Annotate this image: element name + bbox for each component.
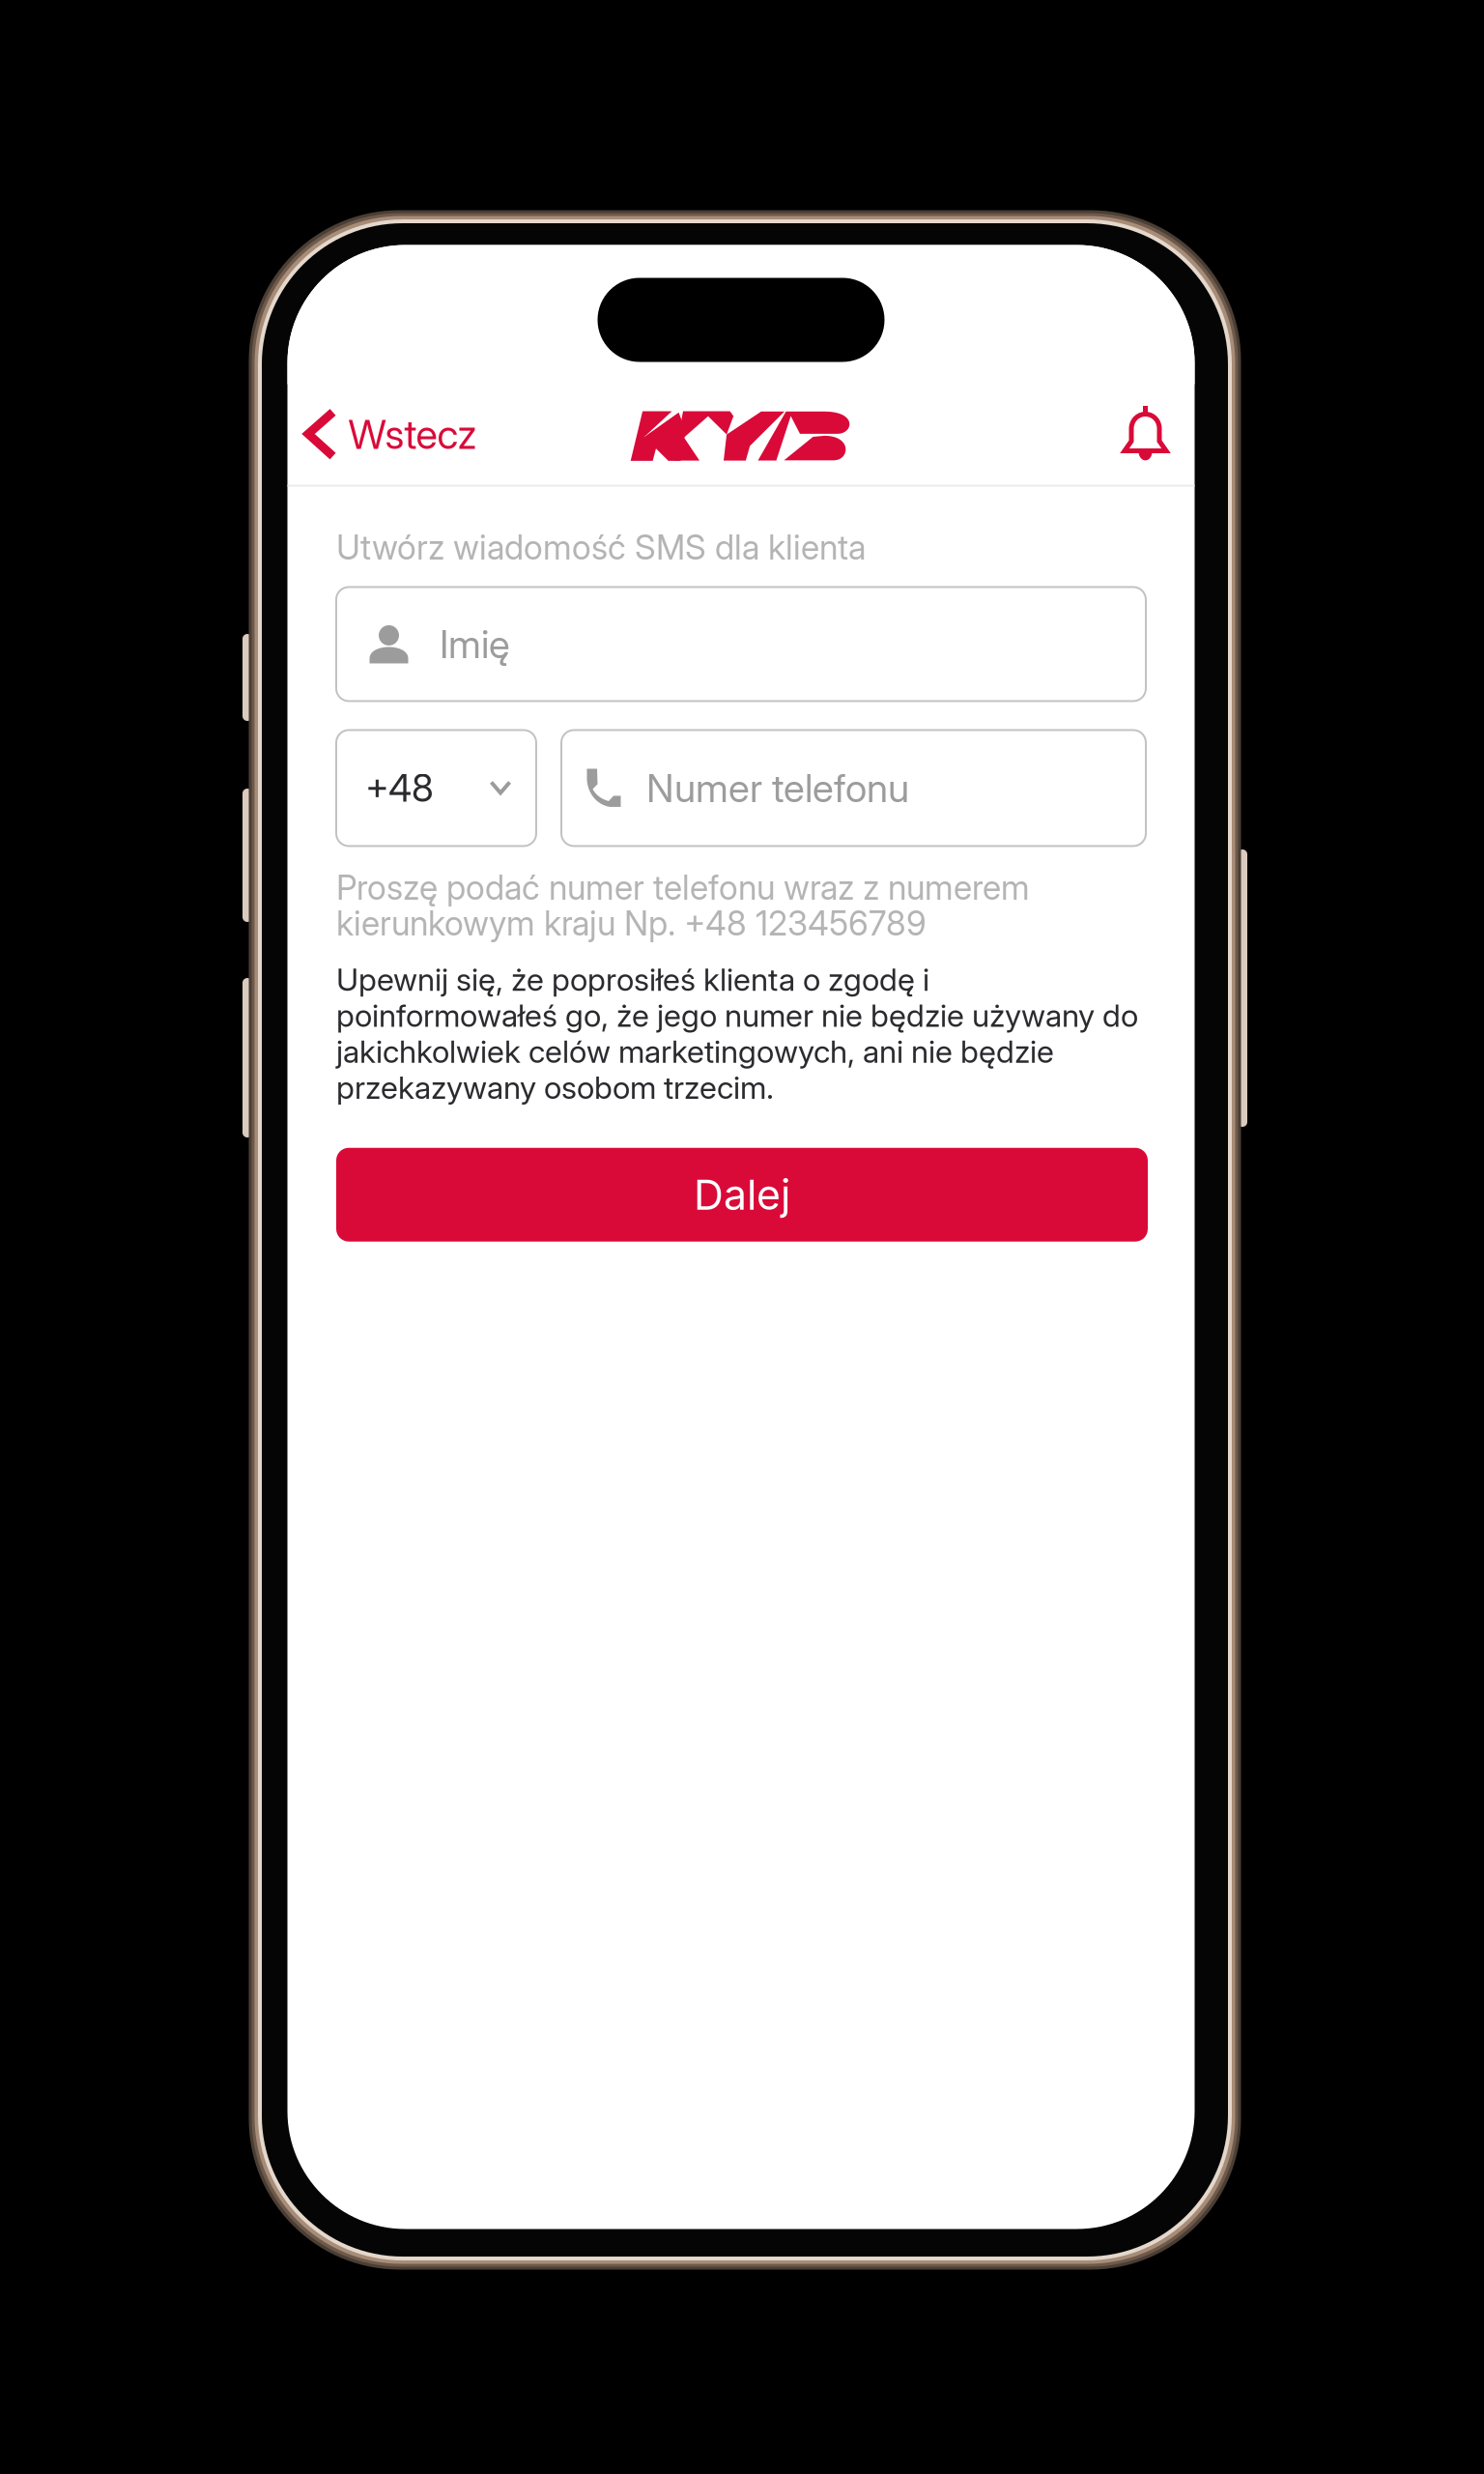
button[interactable]: Wstecz xyxy=(287,394,477,475)
staticText: Upewnij się, że poprosiłeś klienta o zgo… xyxy=(336,961,1138,1106)
staticText: Utwórz wiadomość SMS dla klienta xyxy=(336,527,866,568)
button[interactable]: Dalej xyxy=(336,1148,1148,1242)
staticText: Imię xyxy=(440,621,510,667)
button[interactable]: +48 xyxy=(336,730,536,846)
staticText: Numer telefonu xyxy=(646,765,909,811)
staticText: Dalej xyxy=(694,1170,790,1220)
staticText: Proszę podać numer telefonu wraz z numer… xyxy=(336,867,1030,944)
staticText: +48 xyxy=(365,765,434,811)
button[interactable]: Notifications xyxy=(1120,393,1195,476)
staticText: Wstecz xyxy=(348,410,477,459)
